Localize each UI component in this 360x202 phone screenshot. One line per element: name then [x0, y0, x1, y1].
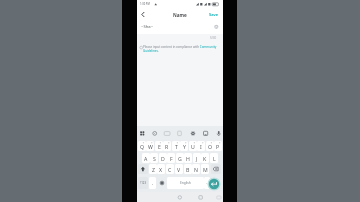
- staticText: Save: [209, 12, 219, 17]
- staticText: English: [180, 181, 191, 185]
- staticText: O: [208, 143, 213, 150]
- staticText: J: [196, 155, 198, 162]
- button[interactable]: ?123: [138, 177, 148, 189]
- staticText: W: [148, 143, 153, 150]
- staticText: S: [153, 155, 156, 162]
- button[interactable]: X: [157, 164, 165, 174]
- button[interactable]: S: [150, 153, 158, 163]
- staticText: V: [177, 166, 181, 173]
- staticText: 5/30: [210, 36, 217, 40]
- button[interactable]: F: [167, 153, 175, 163]
- staticText: K: [203, 155, 207, 162]
- staticText: Q: [140, 143, 145, 150]
- button[interactable]: K: [201, 153, 209, 163]
- button[interactable]: E: [155, 141, 163, 151]
- staticText: .: [206, 180, 208, 186]
- staticText: R: [165, 143, 169, 150]
- button[interactable]: [207, 177, 221, 191]
- staticText: 1:00 PM: [140, 2, 150, 6]
- staticText: ,: [152, 180, 154, 186]
- button[interactable]: M: [201, 164, 209, 174]
- button[interactable]: U: [189, 141, 197, 151]
- button[interactable]: H: [184, 153, 192, 163]
- staticText: U: [191, 143, 195, 150]
- staticText: B: [186, 166, 190, 173]
- button[interactable]: C: [166, 164, 174, 174]
- button[interactable]: Y: [180, 141, 188, 151]
- button[interactable]: V: [175, 164, 183, 174]
- button[interactable]: T: [172, 141, 180, 151]
- staticText: N: [194, 166, 198, 173]
- staticText: D: [161, 155, 165, 162]
- staticText: H: [186, 155, 190, 162]
- staticText: I: [200, 143, 202, 150]
- button[interactable]: I: [197, 141, 205, 151]
- staticText: E: [158, 143, 161, 150]
- button[interactable]: P: [214, 141, 222, 151]
- button[interactable]: [138, 9, 148, 20]
- button[interactable]: D: [159, 153, 167, 163]
- button[interactable]: .: [204, 177, 210, 189]
- staticText: A: [144, 155, 148, 162]
- button[interactable]: Q: [138, 141, 146, 151]
- button[interactable]: [211, 164, 221, 174]
- button[interactable]: ,: [149, 177, 156, 189]
- staticText: C: [168, 166, 172, 173]
- button[interactable]: A: [142, 153, 150, 163]
- button[interactable]: G: [176, 153, 184, 163]
- staticText: F: [170, 155, 173, 162]
- button[interactable]: R: [163, 141, 171, 151]
- button[interactable]: English: [167, 177, 204, 189]
- button[interactable]: Save: [207, 9, 221, 20]
- staticText: L: [213, 155, 216, 162]
- staticText: ~Sha~: [141, 24, 154, 30]
- button[interactable]: O: [206, 141, 214, 151]
- button[interactable]: [138, 164, 148, 174]
- button[interactable]: ~Sha~: [137, 21, 222, 34]
- staticText: Please input content in compliance with …: [143, 45, 220, 55]
- button[interactable]: J: [193, 153, 201, 163]
- staticText: ?123: [140, 181, 147, 185]
- staticText: Y: [183, 143, 186, 150]
- button[interactable]: Z: [149, 164, 157, 174]
- button[interactable]: B: [184, 164, 192, 174]
- staticText: M: [203, 166, 208, 173]
- button[interactable]: W: [146, 141, 154, 151]
- staticText: T: [175, 143, 178, 150]
- staticText: Name: [173, 12, 187, 18]
- staticText: X: [159, 166, 163, 173]
- staticText: G: [178, 155, 182, 162]
- staticText: P: [216, 143, 220, 150]
- staticText: Z: [152, 166, 155, 173]
- button[interactable]: N: [192, 164, 200, 174]
- button[interactable]: L: [210, 153, 218, 163]
